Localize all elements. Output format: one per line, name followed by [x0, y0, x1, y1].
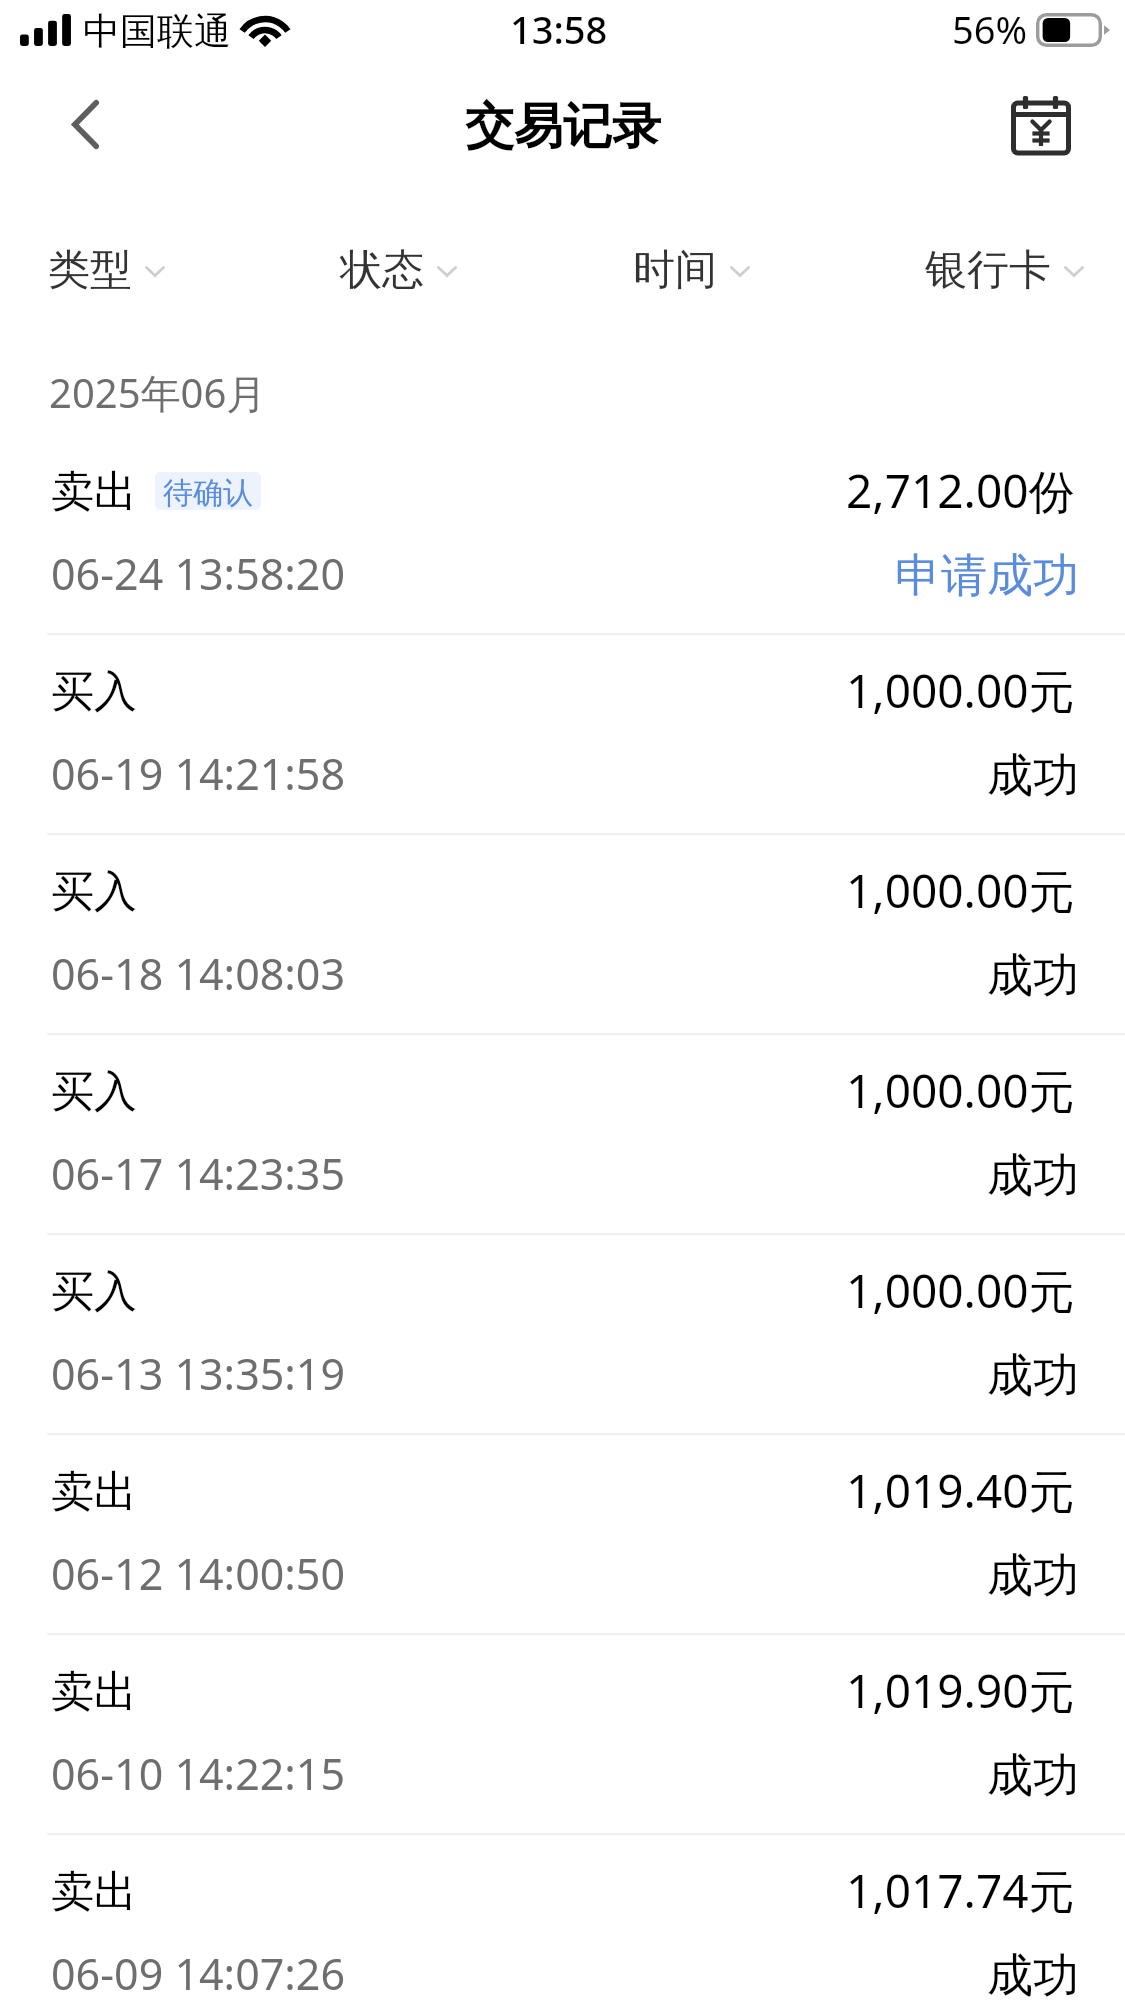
button[interactable]: 卖出: [0, 1635, 1125, 1835]
button[interactable]: 卖出: [0, 1435, 1125, 1635]
staticText: 买入: [51, 1065, 137, 1119]
staticText: 56%: [952, 3, 1028, 55]
button[interactable]: 买入: [0, 835, 1125, 1035]
staticText: 卖出: [51, 1665, 137, 1719]
staticText: 买入: [51, 865, 137, 919]
staticText: 1,000.00元: [846, 859, 1075, 922]
staticText: 银行卡: [925, 244, 1051, 297]
staticText: 2,712.00份: [846, 459, 1075, 522]
staticText: 06-19 14:21:58: [51, 744, 346, 803]
staticText: 1,017.74元: [846, 1859, 1075, 1922]
staticText: 类型: [48, 244, 132, 297]
staticText: 1,019.90元: [846, 1659, 1075, 1722]
staticText: 成功: [987, 747, 1079, 805]
staticText: 中国联通: [83, 8, 231, 55]
staticText: 时间: [633, 244, 717, 297]
staticText: 成功: [987, 1147, 1079, 1205]
button[interactable]: 类型: [48, 215, 165, 325]
button[interactable]: 卖出: [0, 435, 1125, 635]
button[interactable]: Calendar: [1005, 66, 1125, 196]
staticText: 06-18 14:08:03: [51, 944, 346, 1003]
staticText: 买入: [51, 665, 137, 719]
staticText: 成功: [987, 1747, 1079, 1805]
staticText: 卖出: [51, 1865, 137, 1919]
staticText: 13:58: [510, 3, 608, 55]
staticText: 成功: [987, 1947, 1079, 2001]
button[interactable]: 买入: [0, 1035, 1125, 1235]
staticText: 06-10 14:22:15: [51, 1744, 346, 1803]
staticText: 2025年06月: [49, 365, 267, 420]
staticText: 06-24 13:58:20: [51, 544, 346, 603]
staticText: 卖出: [51, 465, 137, 519]
button[interactable]: 时间: [633, 215, 750, 325]
staticText: 06-12 14:00:50: [51, 1544, 346, 1603]
staticText: 1,000.00元: [846, 659, 1075, 722]
staticText: 卖出: [51, 1465, 137, 1519]
staticText: 06-09 14:07:26: [51, 1944, 346, 2001]
staticText: 成功: [987, 1547, 1079, 1605]
staticText: 1,000.00元: [846, 1259, 1075, 1322]
staticText: 交易记录: [465, 96, 661, 158]
button[interactable]: 卖出: [0, 1835, 1125, 2001]
staticText: 待确认: [163, 474, 253, 510]
staticText: 成功: [987, 1347, 1079, 1405]
staticText: 1,000.00元: [846, 1059, 1075, 1122]
staticText: 状态: [340, 244, 424, 297]
staticText: 买入: [51, 1265, 137, 1319]
button[interactable]: Back: [18, 66, 152, 196]
button[interactable]: 买入: [0, 1235, 1125, 1435]
button[interactable]: 银行卡: [925, 215, 1084, 325]
staticText: 成功: [987, 947, 1079, 1005]
staticText: 申请成功: [895, 547, 1079, 605]
staticText: 06-13 13:35:19: [51, 1344, 346, 1403]
button[interactable]: 买入: [0, 635, 1125, 835]
staticText: 1,019.40元: [846, 1459, 1075, 1522]
button[interactable]: 状态: [340, 215, 457, 325]
staticText: 06-17 14:23:35: [51, 1144, 346, 1203]
